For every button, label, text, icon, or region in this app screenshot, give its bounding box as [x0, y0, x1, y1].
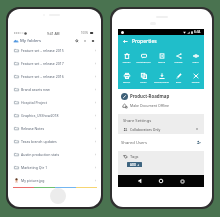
button[interactable]: Austin production stats	[8, 148, 101, 161]
button[interactable]: Search	[74, 38, 80, 44]
button[interactable]: EDIT	[170, 73, 187, 83]
button[interactable]: COMMENTS	[135, 53, 152, 63]
button[interactable]: My picture.jpg	[8, 174, 101, 187]
staticText: TRASH	[118, 60, 135, 63]
staticText: 6:34	[194, 30, 201, 34]
button[interactable]: VIEW	[187, 53, 204, 63]
button[interactable]: Grid view	[82, 38, 88, 44]
staticText: Texas branch updates	[21, 139, 57, 144]
staticText: Brand assets new	[21, 87, 50, 92]
staticText: 9:41 AM	[47, 31, 60, 35]
staticText: COMMENTS	[135, 60, 152, 63]
button[interactable]: TRASH	[118, 53, 135, 63]
staticText: MOVE	[153, 60, 170, 63]
staticText: CLOSE	[187, 80, 204, 83]
button[interactable]: Marketing Qtr 1	[8, 161, 101, 174]
staticText: Product-Roadmap	[130, 93, 170, 99]
staticText: PRINT	[118, 80, 135, 83]
button[interactable]: Back	[135, 176, 145, 186]
staticText: Graphics_USShow2018	[21, 113, 59, 118]
staticText: Release Notes	[21, 126, 45, 131]
button[interactable]: Shared Users	[118, 134, 204, 151]
button[interactable]: Feature set – release 2016	[8, 70, 101, 83]
button[interactable]: Back	[122, 38, 129, 45]
button[interactable]: Add	[90, 38, 96, 44]
staticText: Feature set – release 2015	[21, 48, 64, 53]
staticText: COPY	[135, 80, 152, 83]
button[interactable]: MOVE	[153, 53, 170, 63]
staticText: My picture.jpg	[21, 178, 45, 183]
staticText: Marketing Qtr 1	[21, 165, 48, 170]
staticText: My folders	[20, 38, 42, 44]
staticText: EDIT	[170, 80, 187, 83]
button[interactable]: Release Notes	[8, 122, 101, 135]
staticText: Austin production stats	[21, 152, 60, 157]
button[interactable]: Graphics_USShow2018	[8, 109, 101, 122]
button[interactable]: DOWNLOAD	[153, 73, 170, 83]
button[interactable]: Feature set – release 2015	[8, 44, 101, 57]
button[interactable]: Recents	[177, 176, 187, 186]
button[interactable]: Home	[50, 188, 66, 204]
staticText: ADD +	[130, 163, 140, 167]
staticText: Properties	[132, 38, 157, 45]
staticText: Feature set – release 2016	[21, 74, 64, 79]
staticText: Hospital Project	[21, 100, 47, 105]
button[interactable]: SHARE	[170, 53, 187, 63]
button[interactable]: Make Document Offline	[118, 103, 204, 114]
button[interactable]: ADD +	[127, 162, 142, 167]
button[interactable]: Feature set – release 2017	[8, 57, 101, 70]
staticText: VIEW	[187, 60, 204, 63]
staticText: DOWNLOAD	[153, 80, 170, 83]
staticText: 100%	[81, 31, 89, 35]
staticText: Make Document Offline	[130, 103, 170, 108]
button[interactable]: My folders	[8, 36, 101, 46]
button[interactable]: Home	[156, 176, 166, 186]
button[interactable]: Brand assets new	[8, 83, 101, 96]
button[interactable]: PRINT	[118, 73, 135, 83]
button[interactable]: Hospital Project	[8, 96, 101, 109]
button[interactable]: CLOSE	[187, 73, 204, 83]
staticText: Tags	[130, 154, 139, 159]
staticText: Collaborators Only	[130, 127, 161, 132]
staticText: Shared Users	[121, 140, 148, 146]
button[interactable]: Product-Roadmap	[118, 89, 204, 103]
staticText: SHARE	[170, 60, 187, 63]
button[interactable]: Collaborators Only	[118, 125, 204, 133]
button[interactable]: COPY	[135, 73, 152, 83]
staticText: Feature set – release 2017	[21, 61, 64, 66]
button[interactable]: Texas branch updates	[8, 135, 101, 148]
staticText: Share Settings	[123, 118, 152, 124]
